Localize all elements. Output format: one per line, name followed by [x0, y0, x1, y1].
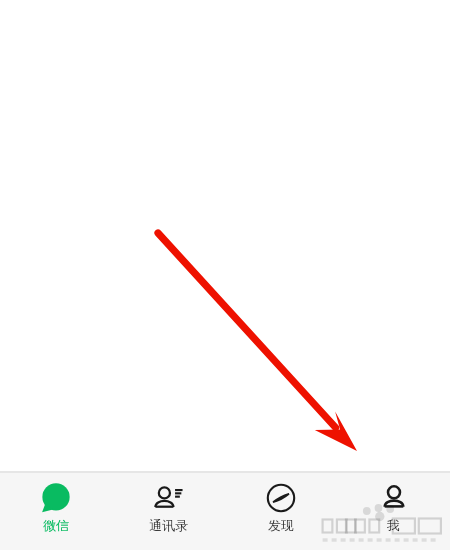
other: 微信 — [41, 483, 71, 513]
staticText: 发现 — [268, 517, 294, 533]
button[interactable]: 微信 — [0, 473, 112, 550]
button[interactable]: 通讯录 — [112, 473, 224, 550]
staticText: 微信 — [43, 517, 69, 533]
button[interactable]: 我 — [337, 473, 450, 550]
staticText: 通讯录 — [149, 517, 188, 533]
button[interactable]: 发现 — [224, 473, 337, 550]
staticText: 我 — [387, 517, 400, 533]
